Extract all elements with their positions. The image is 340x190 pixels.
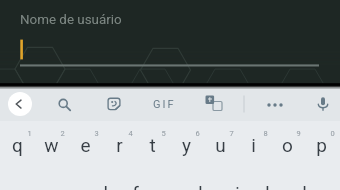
staticText: l: [302, 182, 307, 190]
staticText: 2: [60, 129, 65, 138]
button[interactable]: u: [203, 122, 237, 168]
staticText: w: [44, 134, 59, 156]
button[interactable]: q: [0, 122, 34, 168]
button[interactable]: Back: [5, 89, 35, 119]
staticText: t: [149, 134, 156, 156]
staticText: 5: [161, 129, 166, 138]
staticText: 0: [330, 129, 335, 138]
button[interactable]: i: [236, 122, 270, 168]
staticText: j: [235, 182, 240, 190]
staticText: i: [251, 134, 256, 156]
button[interactable]: Nome de usuário: [8, 4, 332, 68]
staticText: p: [316, 134, 327, 156]
staticText: 8: [263, 129, 268, 138]
button[interactable]: Translate: [199, 90, 229, 120]
button[interactable]: j: [220, 170, 254, 190]
staticText: f: [132, 182, 139, 190]
button[interactable]: More options: [262, 92, 288, 118]
staticText: e: [80, 134, 91, 156]
button[interactable]: f: [118, 170, 152, 190]
button[interactable]: Search: [50, 91, 78, 119]
staticText: 3: [94, 129, 99, 138]
button[interactable]: r: [102, 122, 136, 168]
staticText: 9: [296, 129, 301, 138]
button[interactable]: y: [169, 122, 203, 168]
staticText: 7: [229, 129, 234, 138]
staticText: u: [215, 134, 226, 156]
staticText: d: [97, 182, 108, 190]
button[interactable]: d: [85, 170, 119, 190]
staticText: Nome de usuário: [20, 12, 122, 28]
button[interactable]: e: [68, 122, 102, 168]
staticText: GIF: [153, 98, 176, 111]
button[interactable]: w: [34, 122, 68, 168]
button[interactable]: h: [186, 170, 220, 190]
button[interactable]: Stickers: [100, 90, 128, 118]
staticText: o: [282, 134, 293, 156]
staticText: y: [182, 134, 191, 156]
staticText: 6: [195, 129, 200, 138]
staticText: r: [116, 134, 123, 156]
staticText: h: [198, 182, 209, 190]
button[interactable]: k: [253, 170, 287, 190]
button[interactable]: Voice input: [310, 94, 336, 120]
staticText: q: [12, 134, 23, 156]
button[interactable]: l: [287, 170, 321, 190]
button[interactable]: GIF: [148, 90, 180, 118]
button[interactable]: o: [270, 122, 304, 168]
staticText: 4: [128, 129, 133, 138]
staticText: k: [265, 182, 275, 190]
button[interactable]: t: [135, 122, 169, 168]
staticText: 1: [27, 129, 32, 138]
button[interactable]: p: [304, 122, 338, 168]
